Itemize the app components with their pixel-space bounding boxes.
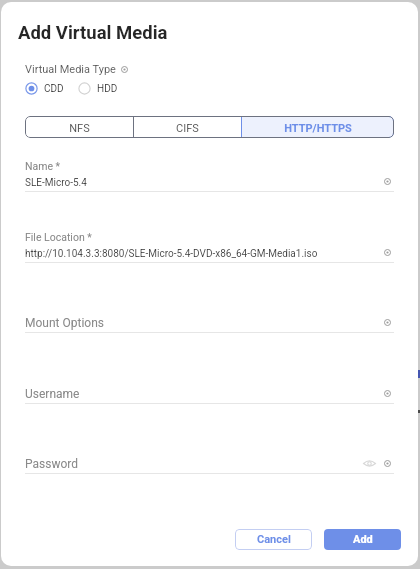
button[interactable]: HTTP/HTTPS [241, 116, 394, 138]
button: Info [380, 456, 394, 470]
staticText: Cancel [257, 533, 291, 546]
button: Info [380, 386, 394, 400]
button[interactable]: CDD [25, 82, 64, 95]
staticText: Username [25, 387, 80, 401]
button[interactable]: Cancel [235, 529, 312, 550]
staticText: HTTP/HTTPS [284, 122, 352, 135]
button[interactable]: Info [380, 386, 394, 400]
staticText: HDD [97, 83, 118, 95]
staticText: CIFS [176, 122, 199, 135]
button[interactable]: Info [380, 315, 394, 329]
button[interactable]: Info [380, 456, 394, 470]
staticText: NFS [69, 122, 90, 135]
button[interactable]: Add [324, 529, 401, 550]
button: Info [380, 315, 394, 329]
staticText: Name * [25, 160, 61, 172]
button[interactable]: Info [380, 174, 394, 188]
button[interactable]: NFS [25, 116, 133, 138]
staticText: Mount Options [25, 316, 104, 330]
button[interactable]: Info [117, 62, 131, 76]
button[interactable]: Show password [361, 455, 377, 471]
button[interactable]: CIFS [134, 116, 241, 138]
staticText: Add [353, 533, 373, 546]
staticText: Virtual Media Type [25, 63, 116, 76]
staticText: CDD [44, 83, 64, 95]
staticText: File Location * [25, 231, 92, 243]
button[interactable]: Info [380, 245, 394, 259]
staticText: Password [25, 457, 79, 471]
staticText: SLE-Micro-5.4 [25, 177, 87, 189]
button: Info [380, 174, 394, 188]
staticText: Add Virtual Media [18, 22, 168, 44]
staticText: http://10.104.3.3:8080/SLE-Micro-5.4-DVD… [25, 248, 318, 260]
button: Info [380, 245, 394, 259]
button[interactable]: HDD [78, 82, 118, 95]
